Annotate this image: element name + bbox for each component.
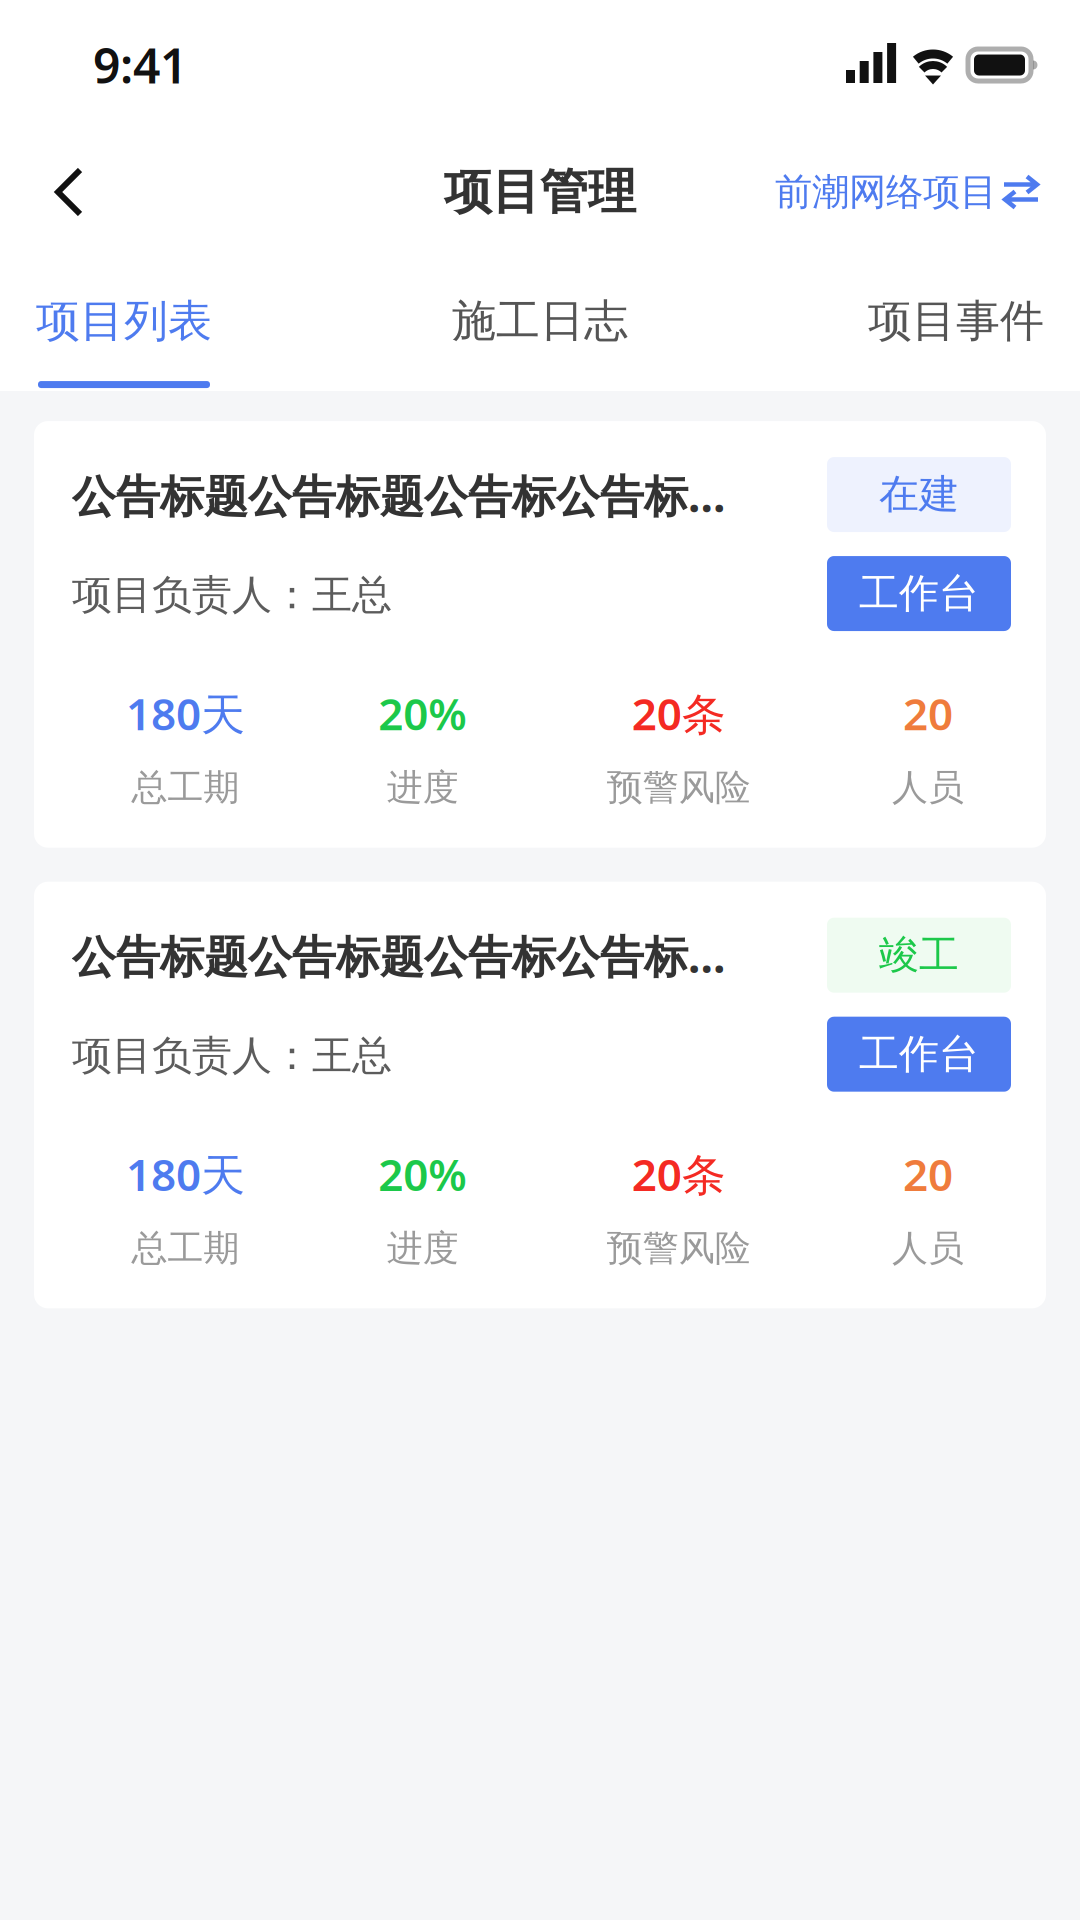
staticText: 进度 (387, 765, 459, 810)
staticText: 公告标题公告标题公告标公告标… (72, 927, 726, 985)
staticText: 竣工 (879, 931, 959, 980)
button[interactable]: 工作台 (827, 556, 1011, 631)
staticText: 施工日志 (452, 294, 628, 348)
staticText: 公告标题公告标题公告标公告标… (72, 466, 726, 524)
staticText: 20 (903, 1145, 953, 1203)
staticText: 项目负责人：王总 (72, 570, 392, 620)
staticText: 总工期 (131, 765, 239, 810)
staticText: 项目事件 (868, 294, 1044, 348)
staticText: 项目负责人：王总 (72, 1031, 392, 1080)
staticText: 进度 (387, 1226, 459, 1270)
button[interactable]: 前潮网络项目 (775, 143, 1040, 241)
staticText: 在建 (879, 470, 959, 519)
button[interactable]: 公告标题公告标题公告标公告标… (34, 421, 1046, 848)
button[interactable]: 返回 (38, 142, 100, 242)
staticText: 20条 (632, 684, 726, 742)
button[interactable]: 施工日志 (452, 254, 628, 391)
staticText: 9:41 (93, 33, 187, 97)
staticText: 工作台 (859, 1030, 979, 1079)
button[interactable]: 公告标题公告标题公告标公告标… (34, 882, 1046, 1308)
staticText: 预警风险 (607, 765, 751, 810)
staticText: 20% (378, 684, 467, 742)
staticText: 180天 (126, 1145, 245, 1203)
button[interactable]: 项目列表 (36, 254, 212, 391)
button[interactable]: 工作台 (827, 1017, 1011, 1092)
staticText: 20条 (632, 1145, 726, 1203)
staticText: 前潮网络项目 (775, 169, 997, 215)
staticText: 预警风险 (607, 1226, 751, 1270)
staticText: 180天 (126, 684, 245, 742)
staticText: 20% (378, 1145, 467, 1203)
staticText: 20 (903, 684, 953, 742)
staticText: 项目管理 (444, 162, 636, 221)
staticText: 项目列表 (36, 294, 212, 348)
staticText: 总工期 (131, 1226, 239, 1270)
button[interactable]: 项目事件 (868, 254, 1044, 391)
staticText: 人员 (892, 1226, 964, 1270)
staticText: 工作台 (859, 569, 979, 618)
staticText: 人员 (892, 765, 964, 810)
